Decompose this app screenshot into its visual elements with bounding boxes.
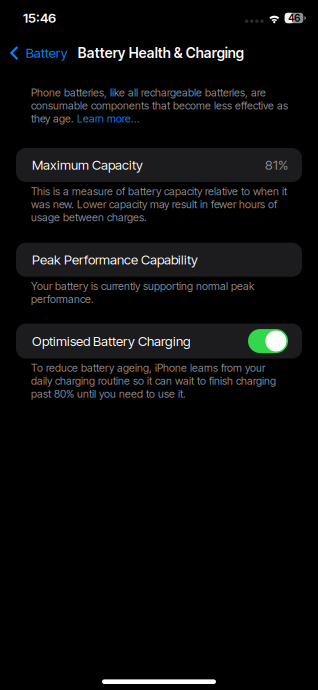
staticText: Optimised Battery Charging xyxy=(32,333,191,349)
staticText: 46 xyxy=(288,12,300,24)
staticText: Maximum Capacity xyxy=(32,157,143,173)
staticText: consumable components that become less e… xyxy=(31,99,288,112)
staticText: Battery xyxy=(26,45,68,61)
button[interactable]: Peak Performance Capability xyxy=(0,243,318,277)
staticText: Phone batteries, like all rechargeable b… xyxy=(31,86,266,99)
staticText: To reduce battery ageing, iPhone learns … xyxy=(31,361,276,400)
button[interactable]: Optimised Battery Charging xyxy=(248,329,288,353)
button[interactable]: Maximum Capacity xyxy=(0,148,318,182)
button[interactable]: Battery xyxy=(0,38,71,68)
staticText: 81% xyxy=(265,157,288,173)
staticText: they age. xyxy=(31,112,77,125)
button[interactable]: Learn more... xyxy=(77,112,140,125)
staticText: Peak Performance Capability xyxy=(32,252,198,268)
staticText: 15:46 xyxy=(23,10,56,26)
staticText: Your battery is currently supporting nor… xyxy=(31,280,254,305)
staticText: This is a measure of battery capacity re… xyxy=(31,185,287,224)
staticText: Learn more... xyxy=(77,112,140,125)
staticText: Battery Health & Charging xyxy=(78,44,244,61)
